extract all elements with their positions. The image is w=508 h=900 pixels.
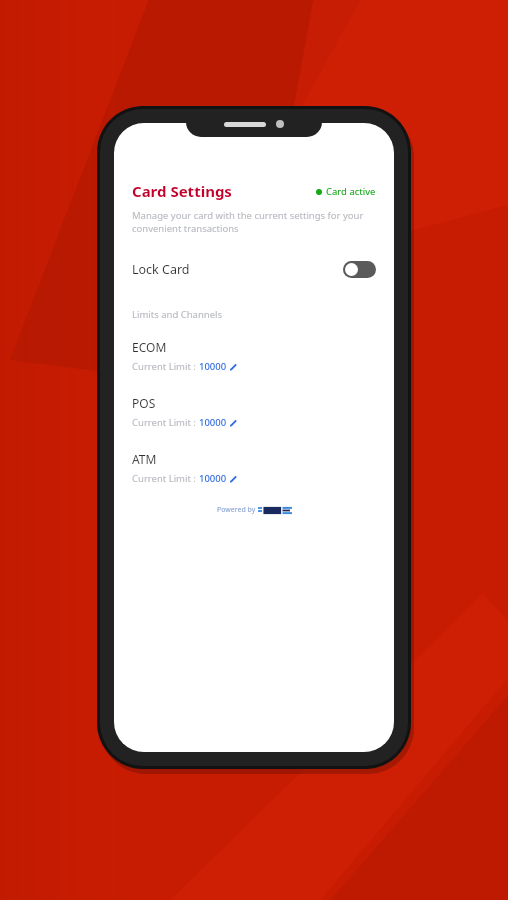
staticText: POS <box>132 395 156 411</box>
staticText: ATM <box>132 451 157 467</box>
staticText: Powered by <box>217 505 258 515</box>
other: Edit limit <box>229 475 237 483</box>
button[interactable]: Current Limit : <box>132 472 237 485</box>
staticText: 10000 <box>199 360 227 373</box>
staticText: Manage your card with the current settin… <box>132 209 376 235</box>
staticText: 10000 <box>199 416 227 429</box>
staticText: Limits and Channels <box>132 308 223 321</box>
button[interactable]: Lock Card toggle <box>343 261 376 278</box>
staticText: Card Settings <box>132 181 232 201</box>
staticText: Current Limit : <box>132 360 199 373</box>
staticText: 10000 <box>199 472 227 485</box>
staticText: ECOM <box>132 339 167 355</box>
button[interactable]: Current Limit : <box>132 416 237 429</box>
button[interactable]: Lock Card <box>132 257 376 282</box>
other: Edit limit <box>229 419 237 427</box>
button[interactable]: Current Limit : <box>132 360 237 373</box>
staticText: Card active <box>326 185 376 198</box>
staticText: Lock Card <box>132 261 190 278</box>
staticText: Current Limit : <box>132 416 199 429</box>
other: Edit limit <box>229 363 237 371</box>
staticText: Current Limit : <box>132 472 199 485</box>
